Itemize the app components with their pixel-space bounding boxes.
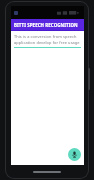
button[interactable]: This is a conversion from speech to text <box>14 34 81 48</box>
staticText: This is a conversion from speech to text <box>14 34 81 39</box>
staticText: BITTI SPEECH RECOGNITION <box>14 22 78 28</box>
button[interactable]: Start speech recognition <box>68 148 81 161</box>
staticText: application develop for free usage <box>14 40 80 45</box>
button[interactable]: BITTI SPEECH RECOGNITION <box>11 19 84 31</box>
